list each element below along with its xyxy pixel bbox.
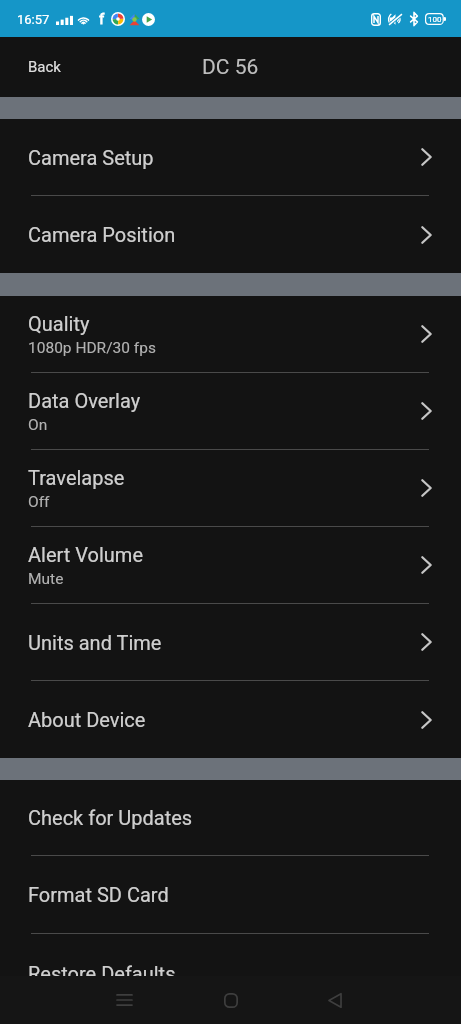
button[interactable]: Back bbox=[311, 976, 359, 1024]
staticText: Restore Defaults bbox=[28, 962, 176, 985]
staticText: Data Overlay bbox=[28, 389, 141, 412]
staticText: Travelapse bbox=[28, 466, 125, 489]
staticText: Camera Setup bbox=[28, 146, 154, 169]
button[interactable]: Data Overlay bbox=[0, 373, 461, 449]
staticText: Check for Updates bbox=[28, 806, 193, 829]
button[interactable]: Camera Position bbox=[0, 196, 461, 273]
staticText: About Device bbox=[28, 708, 146, 731]
staticText: DC 56 bbox=[202, 55, 259, 80]
button[interactable]: Travelapse bbox=[0, 450, 461, 526]
staticText: Back bbox=[28, 58, 61, 76]
staticText: On bbox=[28, 416, 48, 434]
staticText: f bbox=[99, 10, 105, 28]
button[interactable]: Alert Volume bbox=[0, 527, 461, 603]
staticText: Camera Position bbox=[28, 223, 176, 246]
staticText: 1080p HDR/30 fps bbox=[28, 339, 156, 357]
staticText: 100 bbox=[428, 15, 442, 24]
button[interactable]: Camera Setup bbox=[0, 119, 461, 195]
button[interactable]: Recent apps bbox=[100, 976, 148, 1024]
staticText: Off bbox=[28, 493, 50, 511]
button[interactable]: Restore Defaults bbox=[0, 934, 461, 1012]
button[interactable]: Quality bbox=[0, 296, 461, 372]
button[interactable]: Check for Updates bbox=[0, 780, 461, 855]
staticText: Format SD Card bbox=[28, 883, 169, 906]
staticText: 16:57 bbox=[17, 12, 50, 27]
button[interactable]: Home bbox=[207, 976, 255, 1024]
button[interactable]: About Device bbox=[0, 681, 461, 758]
staticText: Quality bbox=[28, 312, 90, 335]
staticText: Alert Volume bbox=[28, 543, 144, 566]
button[interactable]: Units and Time bbox=[0, 604, 461, 680]
button[interactable]: Format SD Card bbox=[0, 856, 461, 933]
button[interactable]: Back bbox=[0, 48, 77, 86]
staticText: Units and Time bbox=[28, 631, 162, 654]
staticText: Mute bbox=[28, 570, 64, 588]
